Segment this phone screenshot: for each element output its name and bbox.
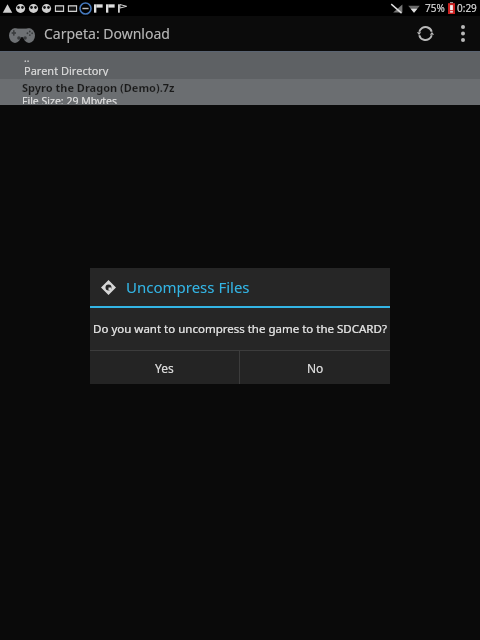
- staticText: No: [307, 360, 324, 376]
- staticText: Yes: [155, 360, 174, 376]
- button[interactable]: Refresh: [404, 16, 446, 51]
- button[interactable]: No: [240, 351, 390, 384]
- staticText: Uncompress Files: [126, 277, 250, 297]
- staticText: 0:29: [457, 1, 477, 15]
- staticText: ..: [24, 51, 30, 65]
- button[interactable]: Spyro the Dragon (Demo).7z: [0, 79, 480, 105]
- button[interactable]: Yes: [90, 351, 239, 384]
- button[interactable]: More options: [446, 16, 480, 51]
- staticText: Parent Directory: [24, 63, 109, 76]
- staticText: File Size: 29 Mbytes: [22, 94, 118, 104]
- staticText: Carpeta: Download: [44, 24, 170, 43]
- staticText: Spyro the Dragon (Demo).7z: [22, 80, 175, 95]
- staticText: Do you want to uncompress the game to th…: [93, 321, 387, 337]
- button[interactable]: ..: [0, 52, 480, 79]
- staticText: 75%: [425, 1, 445, 15]
